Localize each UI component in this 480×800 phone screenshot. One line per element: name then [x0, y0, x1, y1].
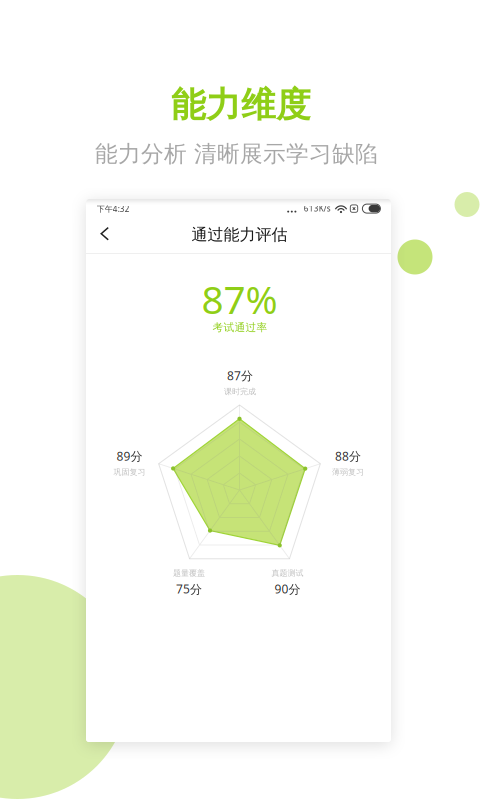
staticText: 90分 [274, 581, 300, 597]
staticText: 课时完成 [224, 387, 256, 396]
staticText: 薄弱复习 [332, 467, 364, 477]
staticText: 87分 [227, 368, 253, 383]
staticText: 613K/s [304, 203, 331, 214]
staticText: 真题测试 [271, 568, 303, 578]
staticText: 89分 [116, 448, 142, 464]
staticText: 75分 [176, 581, 202, 597]
button[interactable]: Back [90, 219, 120, 249]
staticText: 88分 [335, 448, 361, 464]
staticText: 题量覆盖 [173, 568, 205, 578]
staticText: 能力维度 [171, 84, 311, 126]
staticText: 能力分析 清晰展示学习缺陷 [95, 140, 378, 168]
staticText: 通过能力评估 [191, 225, 287, 245]
staticText: 巩固复习 [113, 467, 145, 477]
staticText: 87% [201, 273, 277, 325]
staticText: 考试通过率 [212, 321, 267, 334]
staticText: 下午4:32 [97, 203, 130, 214]
